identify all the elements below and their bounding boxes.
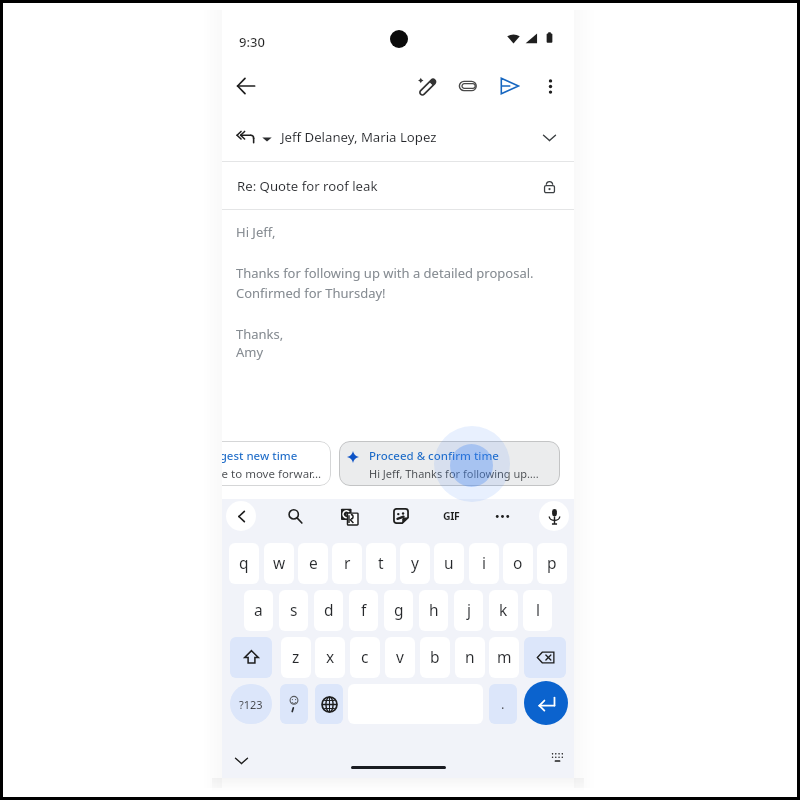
button[interactable]: j — [454, 590, 483, 631]
button[interactable]: h — [419, 590, 448, 631]
button[interactable]: Encryption on — [534, 171, 564, 201]
staticText: Hi Jeff, Thanks for following up…. — [369, 466, 539, 481]
staticText: Thanks for following up with a detailed … — [236, 264, 534, 282]
staticText: a — [254, 599, 263, 620]
button[interactable]: f — [349, 590, 378, 631]
button[interactable]: u — [434, 543, 464, 584]
staticText: z — [292, 646, 300, 667]
staticText: v — [396, 646, 404, 667]
button[interactable]: Proceed & confirm time — [339, 441, 560, 486]
button[interactable]: Back — [226, 66, 266, 106]
staticText: x — [326, 646, 335, 667]
staticText: c — [361, 646, 369, 667]
staticText: ?123 — [239, 697, 263, 712]
button[interactable]: k — [489, 590, 518, 631]
button[interactable]: c — [350, 637, 380, 678]
button[interactable]: Enter — [524, 681, 568, 725]
staticText: o — [513, 552, 523, 573]
staticText: p — [547, 552, 557, 573]
button[interactable]: p — [537, 543, 567, 584]
button[interactable]: Attach file — [449, 67, 487, 105]
staticText: Jeff Delaney, Maria Lopez — [281, 128, 437, 146]
button[interactable]: l — [523, 590, 552, 631]
staticText: h — [429, 599, 439, 620]
staticText: Re: Quote for roof leak — [237, 177, 378, 195]
button[interactable]: r — [332, 543, 362, 584]
button[interactable]: Jeff Delaney, Maria Lopez — [222, 113, 574, 161]
button[interactable]: a — [244, 590, 273, 631]
staticText: f — [361, 599, 367, 620]
button[interactable]: Translate — [335, 502, 363, 530]
staticText: j — [467, 599, 471, 620]
button[interactable]: g — [384, 590, 413, 631]
button[interactable]: i — [469, 543, 499, 584]
button[interactable]: Period — [489, 684, 517, 724]
button[interactable]: Suggest new time — [222, 441, 331, 486]
button[interactable]: More options — [531, 67, 569, 105]
button[interactable]: v — [385, 637, 415, 678]
button[interactable]: Re: Quote for roof leak — [222, 162, 574, 209]
button[interactable]: GIF — [437, 502, 465, 530]
button[interactable]: Smart compose — [408, 67, 446, 105]
button[interactable]: w — [264, 543, 294, 584]
button[interactable]: Stickers — [387, 502, 415, 530]
button[interactable]: Change language — [315, 684, 343, 724]
button[interactable]: m — [489, 637, 519, 678]
button[interactable]: Backspace — [524, 637, 566, 678]
button[interactable]: Emoji — [280, 684, 308, 724]
staticText: Hi Jeff, — [236, 223, 276, 241]
staticText: q — [239, 552, 249, 573]
button[interactable]: z — [281, 637, 311, 678]
staticText: r — [344, 552, 351, 573]
staticText: GIF — [443, 509, 460, 523]
button[interactable]: Symbols — [230, 684, 272, 724]
button[interactable]: Hide keyboard — [227, 746, 255, 774]
button[interactable]: b — [420, 637, 450, 678]
button[interactable]: q — [229, 543, 259, 584]
staticText: u — [444, 552, 454, 573]
staticText: b — [430, 646, 440, 667]
button[interactable]: Expand recipients — [534, 122, 564, 152]
button[interactable]: t — [366, 543, 396, 584]
button[interactable]: Keyboard settings — [544, 744, 570, 770]
button[interactable]: n — [455, 637, 485, 678]
button[interactable]: o — [503, 543, 533, 584]
staticText: Hope to move forwar… — [222, 466, 322, 482]
button[interactable]: More — [488, 502, 516, 530]
staticText: g — [394, 599, 404, 620]
staticText: i — [482, 552, 486, 573]
staticText: l — [536, 599, 540, 620]
button[interactable]: Back — [226, 501, 256, 531]
button[interactable]: d — [314, 590, 343, 631]
staticText: Thanks, — [236, 325, 284, 343]
staticText: n — [465, 646, 475, 667]
staticText: e — [309, 552, 318, 573]
button[interactable]: Send — [490, 67, 528, 105]
button[interactable]: Shift — [230, 637, 272, 678]
staticText: Confirmed for Thursday! — [236, 284, 386, 302]
staticText: . — [501, 695, 505, 713]
staticText: Amy — [236, 343, 264, 361]
button[interactable]: s — [279, 590, 308, 631]
staticText: d — [324, 599, 334, 620]
staticText: Suggest new time — [222, 448, 298, 464]
staticText: w — [273, 552, 286, 573]
button[interactable]: y — [400, 543, 430, 584]
staticText: m — [497, 646, 512, 667]
button[interactable]: e — [298, 543, 328, 584]
staticText: Proceed & confirm time — [369, 448, 499, 464]
staticText: 9:30 — [239, 33, 265, 51]
staticText: s — [290, 599, 298, 620]
button[interactable]: Voice input — [539, 501, 569, 531]
staticText: y — [411, 552, 419, 573]
button[interactable]: x — [315, 637, 345, 678]
staticText: t — [378, 552, 384, 573]
button[interactable]: Search — [281, 502, 309, 530]
staticText: k — [499, 599, 508, 620]
